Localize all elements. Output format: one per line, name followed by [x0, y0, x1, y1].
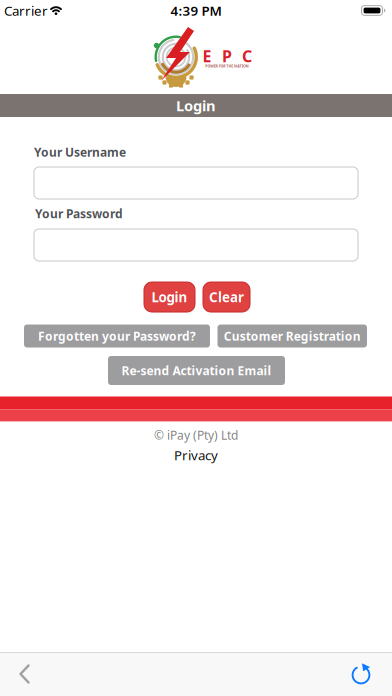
staticText: Your Password: [35, 205, 123, 221]
staticText: Login: [176, 96, 216, 115]
staticText: POWER FOR THE NATION: [178, 61, 275, 71]
staticText: E: [202, 45, 211, 67]
staticText: Forgotten your Password?: [38, 328, 196, 344]
staticText: Login: [151, 288, 187, 306]
staticText: Your Username: [34, 144, 126, 160]
staticText: Clear: [209, 288, 244, 306]
button[interactable]: Re-send Activation Email: [108, 356, 285, 385]
button[interactable]: Clear: [203, 282, 250, 312]
button[interactable]: Reload: [350, 662, 372, 685]
staticText: © iPay (Pty) Ltd: [154, 427, 238, 443]
button[interactable]: Back: [16, 662, 38, 685]
staticText: Re-send Activation Email: [121, 362, 271, 378]
staticText: C: [242, 45, 252, 67]
button[interactable]: Login: [144, 282, 195, 312]
staticText: P: [222, 45, 232, 67]
staticText: Customer Registration: [224, 328, 361, 344]
button[interactable]: Customer Registration: [217, 324, 367, 347]
staticText: Privacy: [174, 446, 218, 464]
staticText: 4:39 PM: [170, 2, 221, 19]
staticText: Carrier: [4, 2, 48, 19]
button[interactable]: Forgotten your Password?: [24, 324, 210, 347]
button[interactable]: Privacy: [174, 446, 218, 464]
